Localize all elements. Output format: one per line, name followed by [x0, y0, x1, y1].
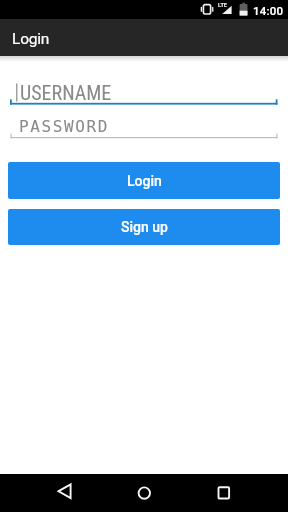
- staticText: 14:00: [253, 4, 284, 17]
- staticText: Sign up: [121, 219, 168, 235]
- staticText: Login: [127, 173, 162, 189]
- staticText: PASSWORD: [19, 117, 109, 136]
- staticText: Login: [12, 30, 50, 48]
- staticText: USERNAME: [20, 81, 112, 104]
- staticText: LTE: [218, 2, 227, 8]
